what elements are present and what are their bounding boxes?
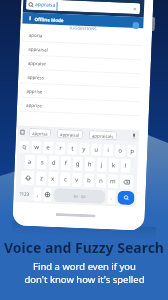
button[interactable]: . — [107, 190, 116, 204]
staticText: . — [110, 193, 113, 201]
button[interactable]: appraisal — [60, 129, 80, 139]
button[interactable]: apprize — [19, 97, 140, 116]
staticText: aporia — [29, 32, 43, 38]
button[interactable]: v — [72, 173, 82, 187]
staticText: k — [112, 161, 116, 169]
staticText: q — [22, 143, 26, 151]
staticText: appraisals — [92, 132, 114, 139]
button[interactable]: n — [96, 174, 106, 188]
button[interactable]: z — [36, 171, 46, 186]
button[interactable] — [117, 190, 135, 205]
staticText: y — [82, 145, 86, 153]
button[interactable]: f — [60, 156, 71, 171]
button[interactable]: b — [84, 173, 94, 187]
staticText: ?123 — [19, 190, 30, 197]
button[interactable] — [131, 133, 137, 139]
staticText: f — [65, 159, 68, 167]
staticText: m — [110, 177, 116, 185]
staticText: a — [28, 158, 32, 166]
staticText: d — [52, 159, 56, 167]
staticText: b — [87, 176, 91, 184]
button[interactable]: m — [108, 174, 118, 188]
button[interactable]: o — [115, 144, 126, 157]
staticText: , — [36, 190, 39, 198]
button[interactable]: h — [84, 157, 95, 171]
button[interactable]: Offline Mode — [22, 12, 144, 28]
button[interactable]: EN · GB — [53, 188, 106, 204]
button[interactable]: , — [33, 187, 42, 201]
staticText: EN · GB — [73, 194, 87, 199]
button[interactable]: j — [96, 158, 107, 172]
staticText: × — [133, 5, 137, 13]
staticText: appress — [27, 74, 44, 80]
button[interactable]: apprisa — [32, 128, 48, 138]
staticText: j — [101, 161, 103, 169]
button[interactable]: d — [48, 156, 59, 170]
button[interactable]: g — [72, 157, 83, 171]
button[interactable]: x — [48, 172, 58, 186]
staticText: v — [75, 176, 79, 184]
button[interactable]: appraisa — [26, 0, 140, 14]
button[interactable]: k — [108, 158, 119, 172]
staticText: e — [46, 144, 50, 152]
button[interactable]: y — [79, 143, 90, 155]
staticText: apprise — [26, 88, 43, 94]
button[interactable]: i — [103, 144, 114, 156]
staticText: p — [130, 147, 134, 155]
staticText: x — [51, 175, 55, 183]
staticText: appraisa — [35, 1, 56, 9]
button[interactable]: r — [55, 142, 66, 154]
staticText: n — [99, 177, 103, 185]
staticText: t — [71, 145, 74, 153]
staticText: h — [88, 160, 92, 168]
staticText: appraisal — [28, 46, 48, 53]
button[interactable]: c — [60, 172, 70, 186]
button[interactable]: t — [67, 142, 78, 155]
button[interactable]: ?123 — [16, 185, 33, 202]
staticText: SUGGESTIONS — [69, 25, 97, 30]
staticText: l — [125, 162, 127, 170]
button[interactable]: appress — [20, 69, 141, 88]
button[interactable]: q — [19, 140, 30, 153]
button[interactable] — [43, 187, 52, 202]
button[interactable]: p — [127, 145, 137, 157]
staticText: u — [94, 145, 98, 154]
button[interactable]: apprise — [19, 83, 141, 102]
button[interactable]: aporia — [22, 27, 143, 46]
staticText: w — [34, 143, 39, 151]
button[interactable]: e — [43, 141, 54, 154]
staticText: o — [118, 146, 122, 155]
button[interactable]: appraisals — [92, 130, 114, 140]
button[interactable]: l — [120, 159, 131, 173]
button[interactable]: w — [31, 141, 42, 153]
staticText: Offline Mode — [34, 16, 65, 23]
staticText: s — [41, 158, 44, 166]
staticText: r — [59, 144, 62, 152]
button[interactable] — [21, 171, 34, 185]
button[interactable]: a — [24, 155, 35, 169]
staticText: z — [40, 174, 43, 182]
staticText: Voice and Fuzzy Search — [0, 238, 168, 257]
staticText: c — [64, 175, 67, 183]
staticText: apprisa — [32, 130, 48, 137]
staticText: apprize — [26, 102, 42, 108]
staticText: don't know how it's spelled — [24, 273, 145, 286]
staticText: appraisal — [60, 131, 80, 138]
staticText: i — [107, 146, 109, 154]
button[interactable]: appraise — [20, 55, 142, 74]
button[interactable]: u — [91, 143, 102, 156]
staticText: appraise — [28, 60, 47, 66]
button[interactable]: appraisal — [21, 41, 143, 60]
staticText: Find a word even if you — [33, 260, 136, 273]
button[interactable]: s — [36, 155, 47, 170]
button[interactable] — [120, 175, 133, 189]
staticText: g — [76, 160, 80, 168]
